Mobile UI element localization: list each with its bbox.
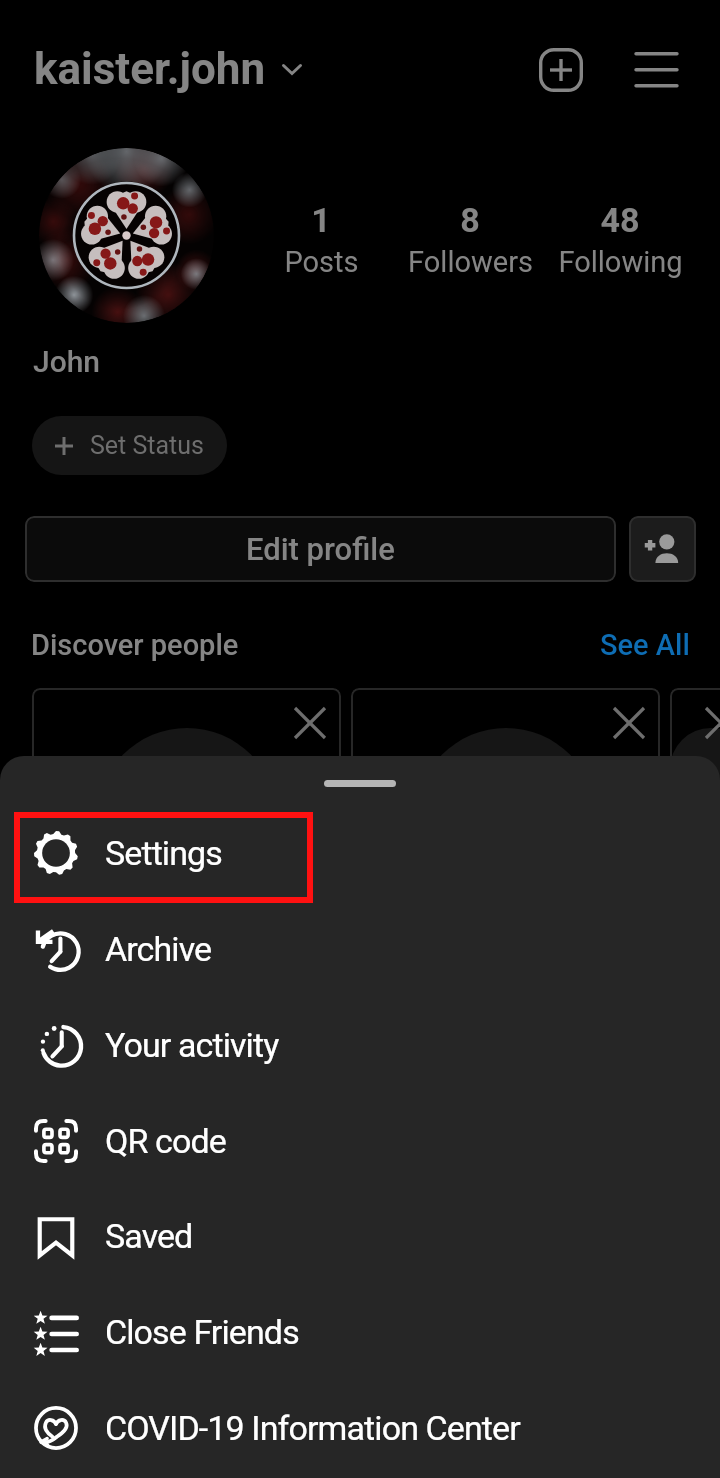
button[interactable]: Profile picture [39,148,214,323]
staticText: Archive [105,929,212,969]
button[interactable]: COVID-19 Information Center [0,1380,720,1476]
staticText: Set Status [90,431,204,460]
button[interactable]: Set Status [32,416,227,475]
staticText: Followers [408,245,533,279]
button[interactable]: 48 [530,200,710,279]
button[interactable]: Dismiss suggestion [32,688,341,948]
button[interactable]: Archive [0,901,720,997]
button[interactable]: 8 [380,200,560,279]
button[interactable]: Discover people [629,516,696,582]
button[interactable]: See All [600,628,690,662]
staticText: Settings [105,833,222,873]
staticText: 8 [460,200,480,240]
staticText: QR code [105,1121,226,1161]
staticText: John [33,344,101,379]
button[interactable]: Dismiss suggestion [351,688,660,948]
staticText: Posts [284,245,359,279]
button[interactable]: Saved [0,1188,720,1284]
staticText: 1 [311,200,331,240]
staticText: 48 [600,200,640,240]
other: Dismiss suggestion [614,708,644,738]
button[interactable]: Settings [0,805,720,901]
button[interactable]: 1 [231,200,411,279]
other: Dismiss suggestion [295,708,325,738]
staticText: COVID-19 Information Center [105,1408,520,1448]
button[interactable]: New post [528,37,593,102]
staticText: kaister.john [34,43,266,95]
staticText: Following [558,245,683,279]
other: Dismiss suggestion [706,708,720,738]
staticText: Edit profile [246,531,395,567]
staticText: Discover people [31,628,239,662]
staticText: Close Friends [105,1312,299,1352]
staticText: Your activity [105,1025,279,1065]
button[interactable]: Menu [624,37,689,102]
button[interactable]: Your activity [0,997,720,1093]
button[interactable]: Close Friends [0,1284,720,1380]
staticText: Saved [105,1216,193,1256]
button[interactable]: Edit profile [25,516,616,582]
button[interactable]: QR code [0,1093,720,1189]
button[interactable]: Dismiss suggestion [670,688,720,948]
